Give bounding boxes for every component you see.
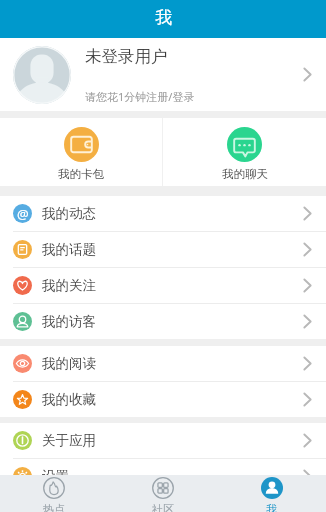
staticText: 我的阅读 <box>42 355 96 372</box>
staticText: 我的动态 <box>42 205 96 222</box>
staticText: 设置 <box>42 468 69 475</box>
button[interactable]: 我 <box>217 475 326 512</box>
staticText: 未登录用户 <box>85 46 168 67</box>
button[interactable]: 我的收藏 <box>0 382 326 417</box>
staticText: 我的关注 <box>42 277 96 294</box>
staticText: 我的聊天 <box>222 167 268 181</box>
staticText: 热点 <box>43 502 65 512</box>
staticText: 关于应用 <box>42 432 96 449</box>
staticText: 我 <box>266 502 277 512</box>
button[interactable]: 未登录用户 <box>0 38 326 111</box>
button[interactable]: 我的关注 <box>0 268 326 303</box>
button[interactable]: 关于应用 <box>0 423 326 458</box>
button[interactable]: 我的聊天 <box>163 118 326 186</box>
staticText: 社区 <box>152 502 174 512</box>
button[interactable]: 社区 <box>108 475 217 512</box>
button[interactable]: 热点 <box>0 475 108 512</box>
staticText: @ <box>17 205 29 223</box>
button[interactable]: @ <box>0 196 326 231</box>
button[interactable]: 我的话题 <box>0 232 326 267</box>
staticText: 我的访客 <box>42 313 96 330</box>
button[interactable]: 我的阅读 <box>0 346 326 381</box>
staticText: 我 <box>155 7 172 28</box>
button[interactable]: 我的访客 <box>0 304 326 339</box>
staticText: 我的话题 <box>42 241 96 258</box>
staticText: 我的收藏 <box>42 391 96 408</box>
button[interactable]: 设置 <box>0 459 326 475</box>
staticText: 请您花1分钟注册/登录 <box>85 89 195 104</box>
button[interactable]: 我的卡包 <box>0 118 162 186</box>
staticText: 我的卡包 <box>58 167 104 181</box>
